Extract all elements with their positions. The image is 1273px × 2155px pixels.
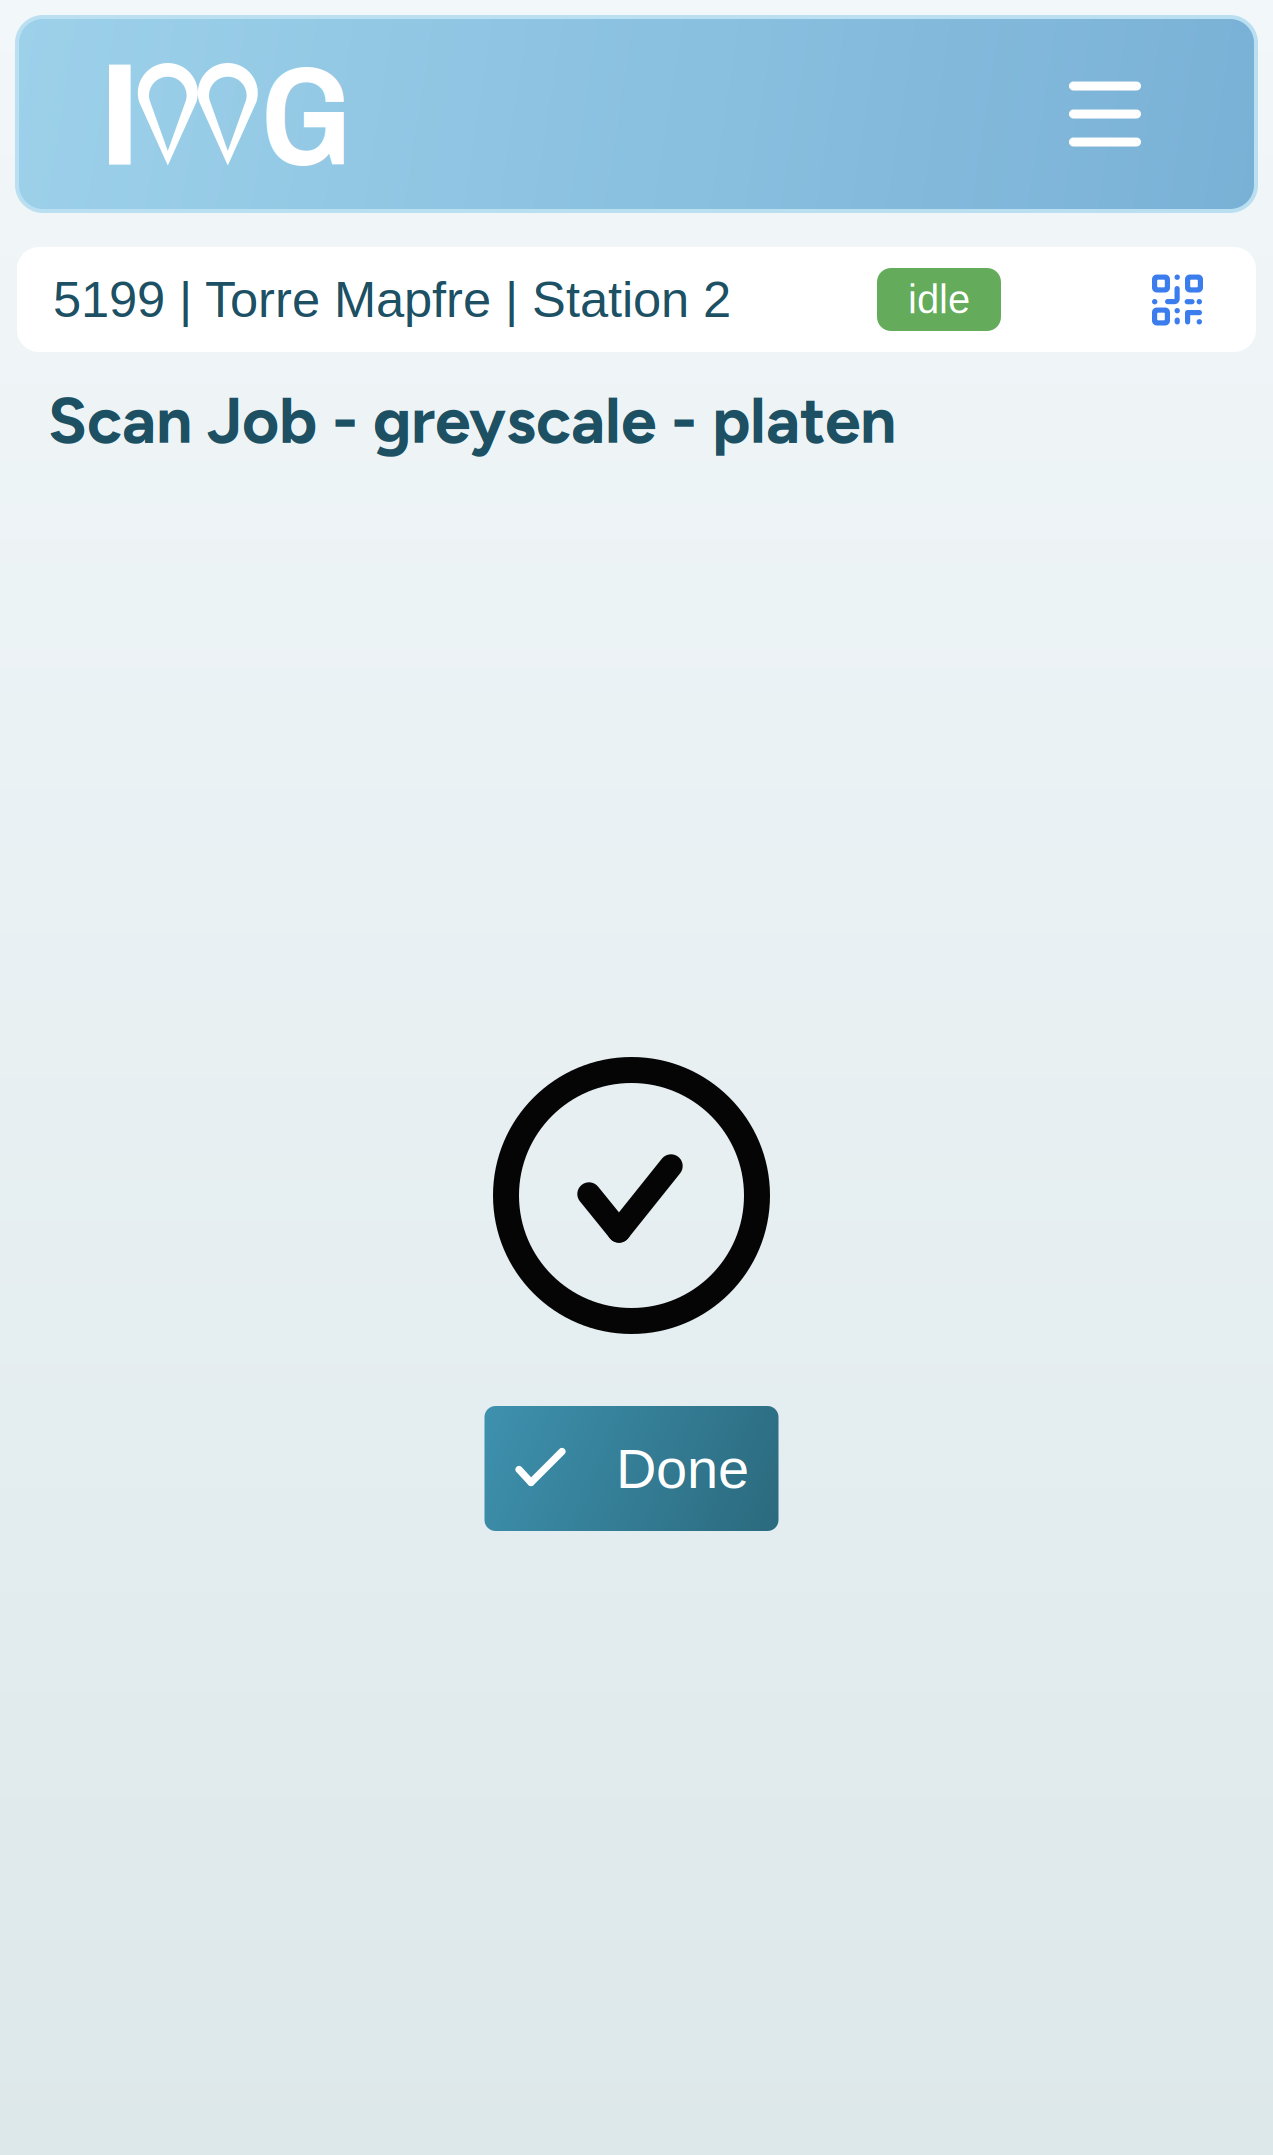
button[interactable]: 5199 | Torre Mapfre | Station 2 [17, 247, 1256, 352]
button[interactable]: Menu [1053, 62, 1157, 166]
staticText: idle [908, 277, 970, 322]
staticText: Scan Job - greyscale - platen [48, 382, 896, 459]
staticText: G [262, 19, 351, 208]
button[interactable]: Done [484, 1406, 778, 1531]
staticText: 5199 | Torre Mapfre | Station 2 [53, 271, 731, 328]
staticText: Done [616, 1437, 749, 1500]
